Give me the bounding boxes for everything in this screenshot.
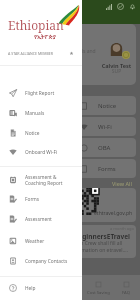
button[interactable]: Onboard Wi-Fi: [0, 142, 82, 162]
button[interactable]: Help: [0, 278, 82, 298]
button[interactable]: View All: [100, 180, 132, 187]
staticText: Check your flights, find manuals and joi…: [10, 48, 100, 62]
button[interactable]: Assessment & Coaching Report: [0, 170, 82, 190]
staticText: Notice: [25, 130, 40, 137]
staticText: Wi-Fi: [98, 123, 112, 131]
staticText: Manuals: [25, 110, 45, 117]
staticText: SUP: [99, 68, 134, 75]
staticText: Assessment: [25, 216, 52, 223]
staticText: Cost Saving: [87, 290, 110, 296]
staticText: #beginnersETravel: [70, 232, 131, 241]
button[interactable]: Company Contacts: [0, 251, 82, 271]
staticText: Weather: [25, 238, 45, 245]
staticText: Home: [8, 290, 20, 296]
button[interactable]: Home: [0, 275, 28, 300]
staticText: View All: [112, 180, 132, 187]
button[interactable]: Wi-Fi: [4, 117, 136, 136]
button[interactable]: Forms: [4, 159, 136, 178]
staticText: Assessment & Coaching Report: [25, 174, 63, 186]
staticText: ethtravel.gov.ph: [94, 210, 133, 217]
staticText: Calvin Test: [99, 62, 134, 69]
button[interactable]: Signal: [104, 2, 113, 11]
staticText: Forms: [98, 165, 116, 173]
button[interactable]: OBA: [4, 138, 136, 157]
staticText: Company Contacts: [25, 258, 68, 265]
button[interactable]: Cost Saving: [84, 275, 112, 300]
staticText: Cabin Crew shall fill all information on…: [70, 240, 136, 253]
button[interactable]: ethtravel.gov.ph: [4, 188, 136, 222]
button[interactable]: Welcome, Test: [4, 24, 136, 85]
button[interactable]: Notice: [4, 96, 136, 115]
button[interactable]: Forms: [0, 189, 82, 209]
staticText: Help: [25, 285, 36, 292]
staticText: Welcome, Test: [10, 36, 64, 46]
button[interactable]: Scan: [56, 275, 84, 300]
staticText: Onboard Wi-Fi: [25, 149, 58, 156]
button[interactable]: Flight Report: [0, 83, 82, 103]
staticText: Ethiopian: [8, 17, 64, 33]
button[interactable]: Notice: [0, 123, 82, 143]
staticText: OBA: [98, 144, 111, 152]
staticText: FAQ: [122, 290, 130, 296]
button[interactable]: Weather: [0, 231, 82, 251]
button[interactable]: Tasks: [116, 2, 125, 11]
staticText: Flight Report: [25, 90, 55, 97]
staticText: A STAR ALLIANCE MEMBER: [8, 51, 54, 56]
button[interactable]: a month ago: [4, 225, 136, 258]
button[interactable]: Manuals: [0, 103, 82, 123]
button[interactable]: Flights: [28, 275, 56, 300]
staticText: የኢትዮጵያ: [34, 33, 57, 41]
staticText: Forms: [25, 196, 40, 203]
button[interactable]: Assessment: [0, 209, 82, 229]
button[interactable]: Notifications: [128, 2, 137, 11]
staticText: Notice: [98, 102, 117, 110]
staticText: a month ago: [110, 226, 134, 231]
